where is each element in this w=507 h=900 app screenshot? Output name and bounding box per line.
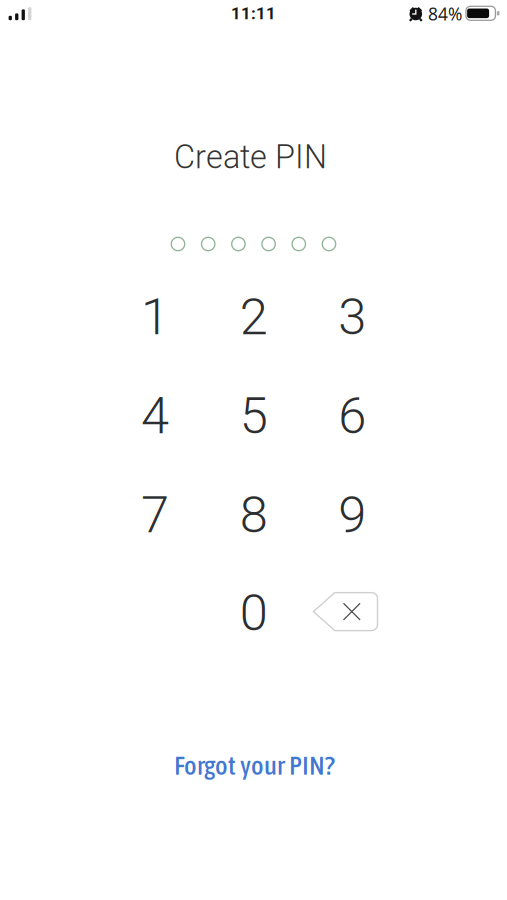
button[interactable]: 7 [109,469,201,561]
staticText: 7 [141,485,169,545]
staticText: 6 [338,386,366,446]
staticText: 2 [240,287,268,347]
staticText: 9 [338,485,366,545]
button[interactable]: Forgot your PIN? [164,742,345,788]
button[interactable]: 3 [306,271,398,363]
staticText: 4 [141,386,169,446]
button[interactable]: 4 [109,370,201,462]
staticText: 3 [338,287,366,347]
staticText: 8 [240,485,268,545]
button[interactable]: Delete [313,592,378,632]
staticText: 0 [240,583,268,643]
staticText: 1 [141,287,169,347]
button[interactable]: 9 [306,469,398,561]
button[interactable]: 6 [306,370,398,462]
button[interactable]: 5 [208,370,300,462]
button[interactable]: 1 [109,271,201,363]
button[interactable]: 0 [208,567,300,659]
button[interactable]: 2 [208,271,300,363]
staticText: 5 [240,386,268,446]
staticText: 11:11 [231,4,276,23]
button[interactable]: 8 [208,469,300,561]
staticText: 84% [428,2,462,26]
staticText: Create PIN [174,138,327,176]
staticText: Forgot your PIN? [174,750,335,780]
